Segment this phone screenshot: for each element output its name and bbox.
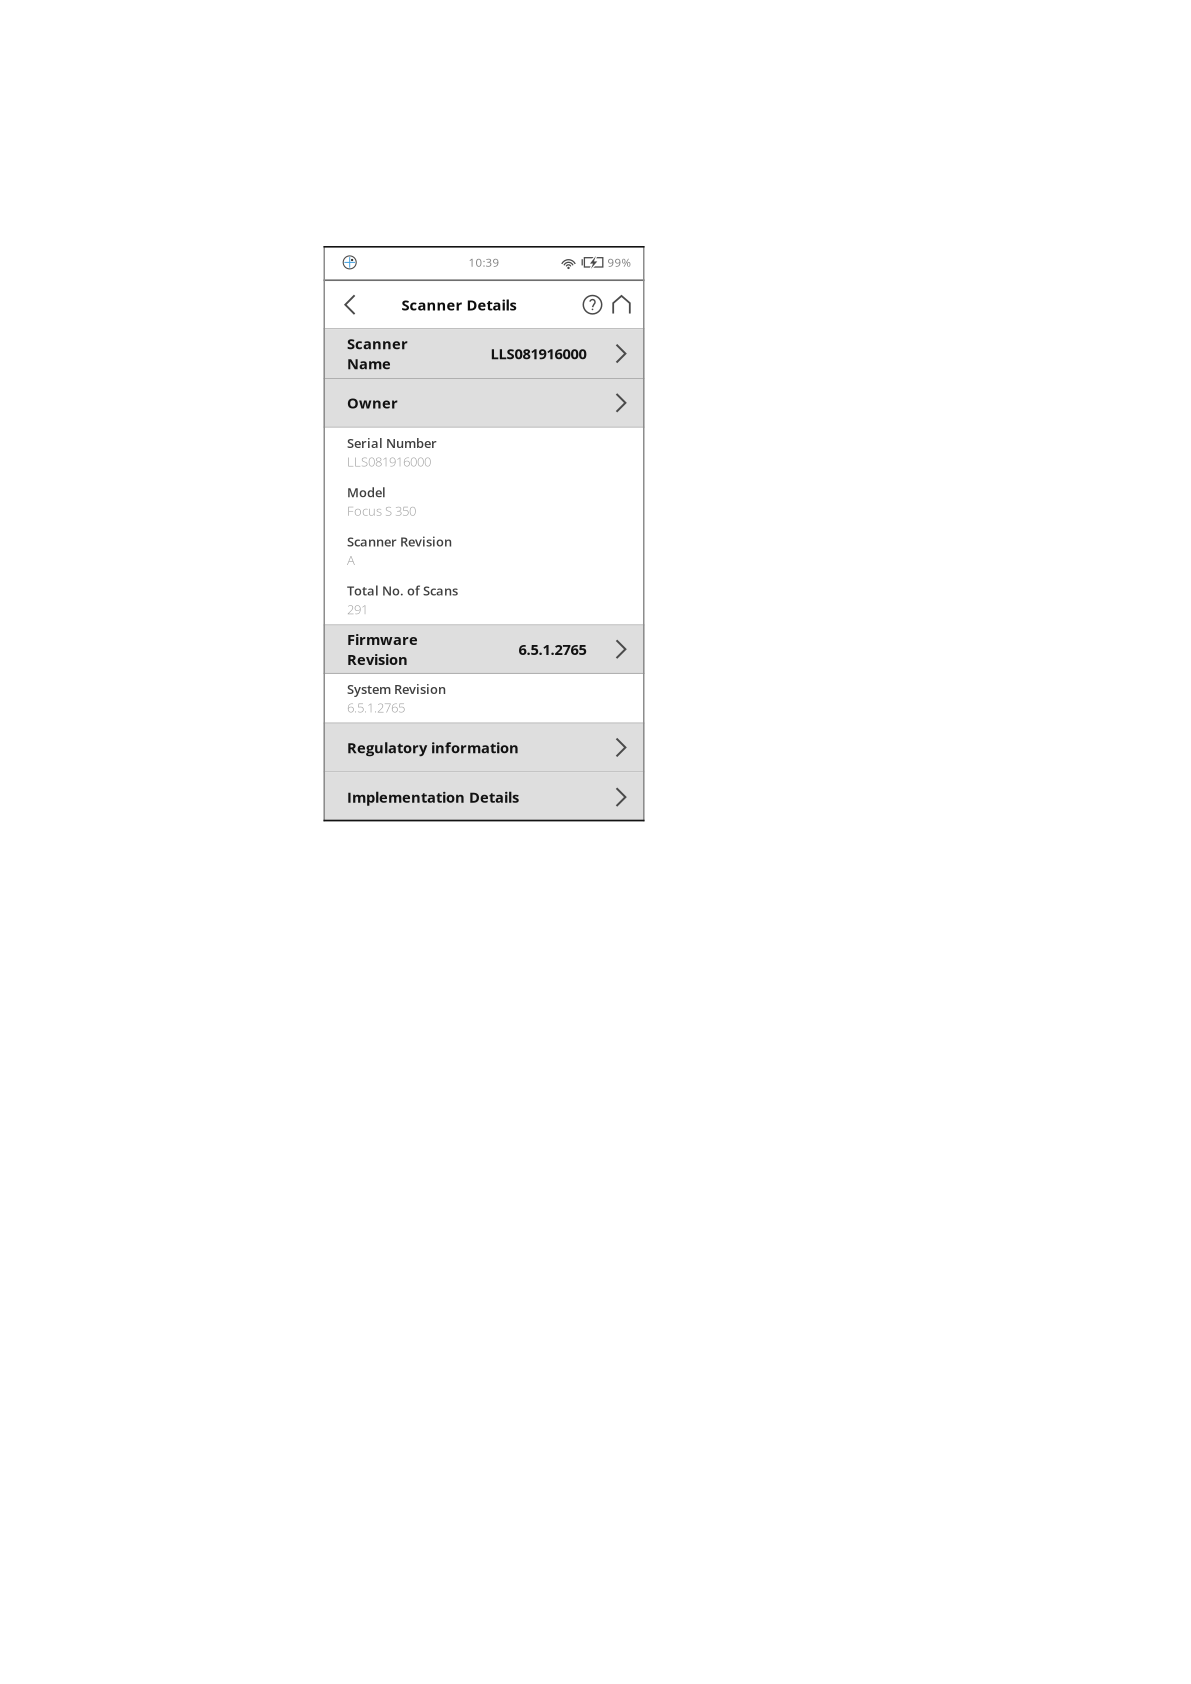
- staticText: 6.5.1.2765: [518, 639, 586, 659]
- staticText: Scanner Details: [401, 295, 516, 315]
- button[interactable]: Firmware Revision: [323, 625, 644, 673]
- staticText: Model: [347, 483, 386, 501]
- staticText: System Revision: [347, 680, 446, 698]
- button[interactable]: Back: [333, 281, 366, 328]
- staticText: Firmware Revision: [347, 629, 418, 669]
- button[interactable]: Implementation Details: [323, 772, 644, 822]
- button[interactable]: Scanner Name: [323, 329, 644, 378]
- button[interactable]: Home: [610, 281, 632, 328]
- staticText: LLS081916000: [347, 453, 431, 470]
- staticText: Serial Number: [347, 434, 437, 452]
- button[interactable]: Owner: [323, 379, 644, 427]
- staticText: LLS081916000: [490, 344, 586, 364]
- staticText: Owner: [347, 393, 398, 413]
- staticText: 6.5.1.2765: [347, 699, 405, 716]
- staticText: Total No. of Scans: [347, 582, 458, 599]
- button[interactable]: Regulatory information: [323, 724, 644, 771]
- staticText: Focus S 350: [347, 502, 416, 520]
- staticText: Implementation Details: [347, 787, 519, 807]
- staticText: 291: [347, 600, 368, 618]
- staticText: Scanner Name: [347, 334, 408, 373]
- staticText: Scanner Revision: [347, 533, 452, 550]
- staticText: 10:39: [468, 255, 499, 270]
- staticText: Regulatory information: [347, 737, 519, 757]
- staticText: 99%: [607, 255, 630, 270]
- staticText: A: [347, 551, 355, 569]
- button[interactable]: Help: [580, 281, 604, 328]
